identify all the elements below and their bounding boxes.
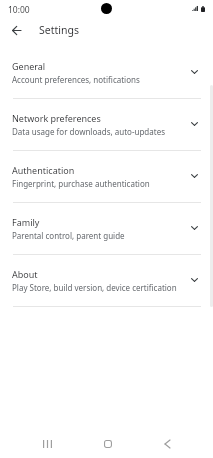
button[interactable]: Recent apps	[33, 430, 61, 458]
staticText: General	[12, 60, 46, 72]
staticText: Network preferences	[12, 112, 101, 124]
button[interactable]: Back	[153, 430, 181, 458]
button[interactable]: About	[0, 255, 213, 306]
staticText: Data usage for downloads, auto-updates	[12, 126, 165, 137]
button[interactable]: Home	[94, 430, 122, 458]
button[interactable]: Family	[0, 203, 213, 254]
button[interactable]: Expand Family	[182, 216, 206, 240]
staticText: Authentication	[12, 164, 75, 176]
button[interactable]: Authentication	[0, 151, 213, 202]
button[interactable]: Expand About	[182, 268, 206, 292]
staticText: 10:00	[8, 4, 30, 16]
staticText: Play Store, build version, device certif…	[12, 282, 177, 293]
button[interactable]: Navigate up	[2, 16, 30, 44]
staticText: Account preferences, notifications	[12, 74, 140, 85]
button[interactable]: Expand General	[182, 60, 206, 84]
staticText: About	[12, 268, 38, 280]
staticText: Settings	[39, 23, 79, 37]
button[interactable]: Expand Network preferences	[182, 112, 206, 136]
button[interactable]: Network preferences	[0, 99, 213, 150]
staticText: Family	[12, 216, 40, 228]
staticText: Fingerprint, purchase authentication	[12, 178, 150, 189]
button[interactable]: General	[0, 47, 213, 98]
staticText: Parental control, parent guide	[12, 230, 125, 241]
button[interactable]: Expand Authentication	[182, 164, 206, 188]
